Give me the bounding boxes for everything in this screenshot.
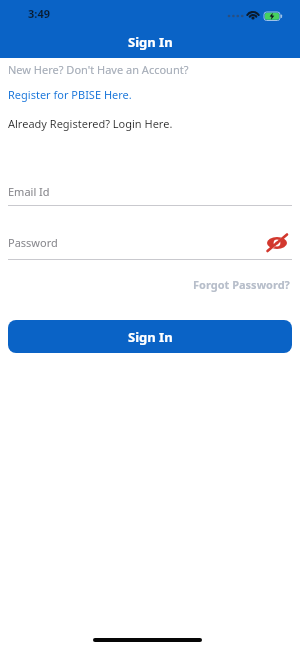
button[interactable]: Sign In [8, 320, 292, 353]
staticText: New Here? Don't Have an Account? [8, 62, 189, 77]
staticText: 3:49 [28, 6, 50, 21]
staticText: Sign In [128, 33, 173, 51]
staticText: Password [8, 235, 58, 250]
button[interactable] [264, 232, 290, 254]
button[interactable]: Register for PBISE Here. [8, 87, 132, 102]
staticText: Sign In [128, 328, 173, 346]
staticText: Already Registered? Login Here. [8, 116, 173, 131]
button[interactable]: Forgot Password? [193, 277, 290, 292]
staticText: Email Id [8, 184, 50, 199]
